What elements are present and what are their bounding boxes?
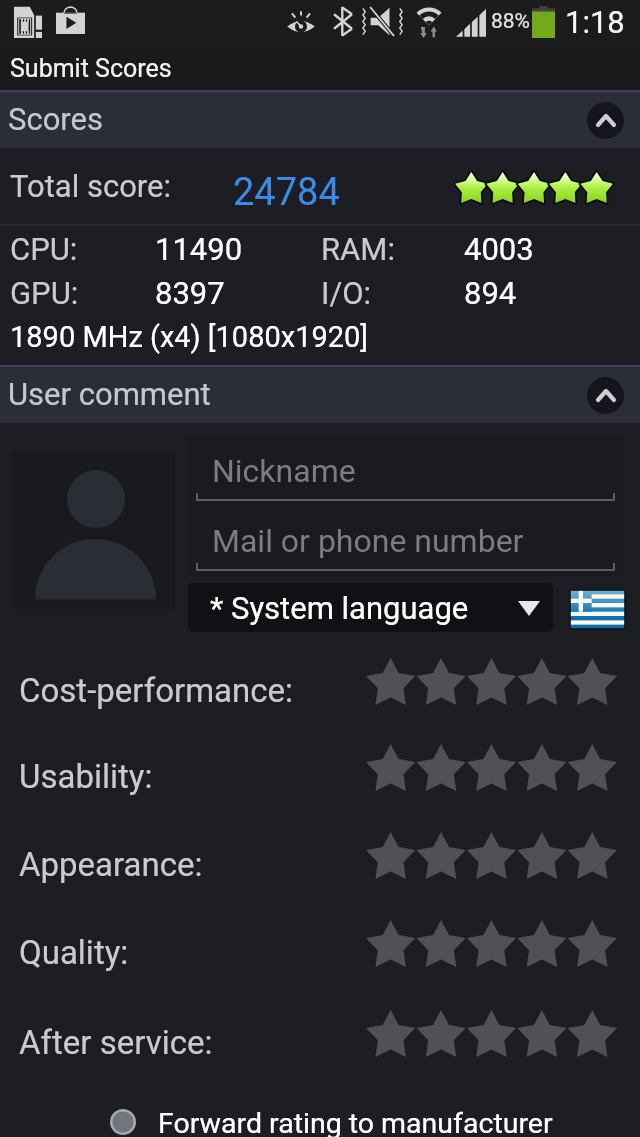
staticText: Scores: [8, 101, 103, 137]
button[interactable]: Mail or phone number: [187, 506, 624, 576]
staticText: 894: [464, 275, 517, 311]
staticText: RAM:: [321, 231, 395, 267]
button[interactable]: Appearance: rating: [366, 833, 618, 883]
button[interactable]: Collapse User comment: [587, 377, 624, 414]
button[interactable]: Forward rating toggle: [110, 1109, 136, 1135]
button[interactable]: Scores: [0, 90, 640, 148]
staticText: I/O:: [321, 275, 372, 311]
button[interactable]: Quality: rating: [366, 921, 618, 971]
staticText: CPU:: [10, 231, 78, 267]
staticText: 1:18: [565, 4, 625, 40]
button[interactable]: Nickname: [187, 437, 624, 506]
staticText: * System language: [210, 590, 469, 626]
staticText: 24784: [233, 170, 340, 215]
staticText: 11490: [155, 231, 243, 267]
button[interactable]: * System language: [188, 583, 553, 632]
staticText: Submit Scores: [10, 54, 172, 83]
staticText: Quality:: [19, 933, 129, 972]
staticText: 1890 MHz (x4) [1080x1920]: [10, 320, 369, 354]
staticText: Nickname: [212, 452, 356, 490]
staticText: Forward rating to manufacturer: [158, 1107, 553, 1137]
button[interactable]: Avatar: [13, 451, 175, 609]
staticText: 4003: [464, 231, 534, 267]
button[interactable]: Cost-performance: rating: [366, 659, 618, 709]
staticText: Appearance:: [19, 845, 203, 884]
button[interactable]: Score rating 5 stars: [455, 171, 615, 208]
button[interactable]: Language: [570, 590, 625, 629]
button[interactable]: Collapse Scores: [587, 102, 624, 139]
staticText: Cost-performance:: [19, 671, 294, 710]
staticText: After service:: [19, 1023, 213, 1062]
button[interactable]: Usability: rating: [366, 745, 618, 795]
staticText: Total score:: [10, 168, 171, 204]
button[interactable]: After service: rating: [366, 1011, 618, 1061]
staticText: Usability:: [19, 757, 153, 796]
button[interactable]: User comment: [0, 365, 640, 423]
staticText: Mail or phone number: [212, 522, 524, 560]
staticText: 88%: [491, 9, 530, 34]
staticText: GPU:: [10, 275, 79, 311]
staticText: User comment: [8, 376, 211, 412]
staticText: 8397: [155, 275, 225, 311]
